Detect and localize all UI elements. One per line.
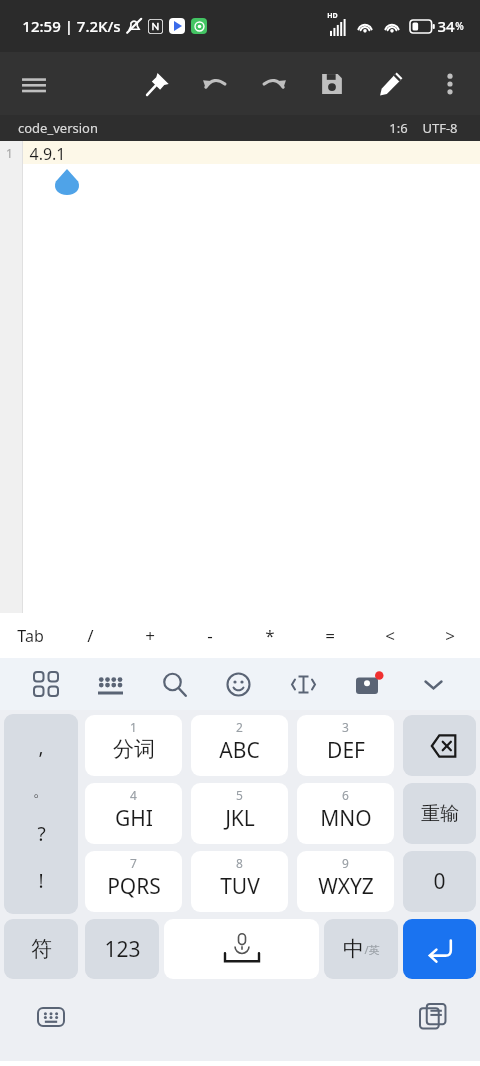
button[interactable]: Search	[142, 658, 206, 710]
staticText: 1:6	[389, 119, 408, 137]
staticText: 2	[236, 719, 243, 735]
staticText: 8	[236, 855, 243, 871]
staticText: 。	[33, 781, 49, 801]
staticText: /英	[364, 942, 380, 957]
button[interactable]: 符	[4, 919, 78, 979]
button[interactable]: key	[85, 783, 182, 844]
staticText: -	[207, 624, 213, 647]
staticText: ,	[38, 734, 44, 760]
button[interactable]: Emoji	[206, 658, 271, 710]
button[interactable]: toolbar action	[12, 62, 56, 106]
button[interactable]: Toolbox	[336, 658, 401, 710]
button[interactable]: <	[360, 613, 420, 658]
staticText: *	[265, 624, 275, 647]
button[interactable]: key	[191, 783, 288, 844]
button[interactable]: key	[85, 851, 182, 912]
staticText: JKL	[225, 804, 255, 833]
button[interactable]: key	[297, 715, 394, 776]
staticText: HD	[327, 11, 338, 21]
button[interactable]: 重输	[403, 783, 476, 844]
staticText: GHI	[115, 804, 153, 833]
staticText: =	[325, 624, 335, 647]
staticText: 7	[130, 855, 137, 871]
button[interactable]: Clipboard	[414, 998, 452, 1036]
staticText: /	[87, 624, 94, 647]
button[interactable]: 中	[324, 919, 398, 979]
staticText: ABC	[219, 736, 260, 765]
button[interactable]: toolbar action	[428, 62, 472, 106]
staticText: DEF	[327, 736, 365, 765]
button[interactable]: toolbar action	[193, 62, 237, 106]
button[interactable]: key	[85, 715, 182, 776]
staticText: 0	[433, 867, 446, 896]
button[interactable]: 1	[0, 141, 480, 613]
button[interactable]: Keyboard layout	[78, 658, 142, 710]
button[interactable]: +	[120, 613, 180, 658]
staticText: 分词	[113, 736, 155, 762]
button[interactable]: key	[4, 714, 78, 914]
staticText: WXYZ	[318, 872, 374, 901]
button[interactable]: toolbar action	[252, 62, 296, 106]
staticText: ?	[37, 821, 46, 847]
button[interactable]	[403, 919, 476, 979]
staticText: TUV	[220, 872, 260, 901]
staticText: PQRS	[107, 872, 161, 901]
button[interactable]: Hide keyboard	[401, 658, 466, 710]
staticText: 12:59 | 7.2K/s	[22, 16, 121, 36]
staticText: code_version	[18, 119, 98, 137]
staticText: 34	[437, 16, 455, 36]
staticText: 1	[6, 145, 13, 161]
staticText: 9	[342, 855, 349, 871]
staticText: %	[455, 19, 464, 33]
staticText: +	[145, 624, 155, 647]
button[interactable]: key	[191, 851, 288, 912]
button[interactable]	[164, 919, 319, 979]
button[interactable]: 0	[403, 851, 476, 912]
staticText: 1	[130, 719, 137, 735]
staticText: UTF-8	[422, 119, 458, 137]
staticText: 4	[130, 787, 137, 803]
button[interactable]: =	[300, 613, 360, 658]
staticText: 重输	[421, 802, 459, 826]
button[interactable]: toolbar action	[369, 62, 413, 106]
staticText: 6	[342, 787, 349, 803]
button[interactable]: >	[420, 613, 480, 658]
button[interactable]: Keyboard	[32, 998, 70, 1036]
button[interactable]: Apps	[14, 658, 78, 710]
staticText: 3	[342, 719, 349, 735]
staticText: !	[38, 868, 44, 894]
button[interactable]: toolbar action	[310, 62, 354, 106]
button[interactable]: Text cursor	[271, 658, 336, 710]
button[interactable]: key	[191, 715, 288, 776]
button[interactable]: key	[403, 715, 476, 776]
staticText: <	[385, 624, 395, 647]
staticText: 符	[31, 936, 52, 962]
staticText: MNO	[320, 804, 372, 833]
button[interactable]: toolbar action	[135, 62, 179, 106]
staticText: 123	[104, 935, 141, 964]
staticText: 4.9.1	[29, 143, 66, 165]
button[interactable]: key	[297, 783, 394, 844]
button[interactable]: /	[60, 613, 120, 658]
button[interactable]: key	[297, 851, 394, 912]
staticText: >	[445, 624, 455, 647]
button[interactable]: *	[240, 613, 300, 658]
staticText: 5	[236, 787, 243, 803]
staticText: 中	[343, 936, 364, 962]
button[interactable]: -	[180, 613, 240, 658]
staticText: Tab	[17, 625, 44, 647]
button[interactable]: Tab	[0, 613, 60, 658]
button[interactable]: 123	[85, 919, 159, 979]
